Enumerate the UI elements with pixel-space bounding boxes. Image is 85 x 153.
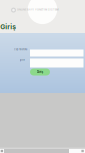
- button[interactable]: Giriş: [30, 68, 50, 75]
- staticText: Giriş: [0, 23, 16, 31]
- staticText: ONLINE BAYİ YÖNETİM SİSTEMİ: [17, 8, 59, 11]
- staticText: Giriş: [36, 70, 43, 74]
- staticText: Şifre: [19, 59, 24, 62]
- staticText: Cep Telefonu: [14, 48, 27, 51]
